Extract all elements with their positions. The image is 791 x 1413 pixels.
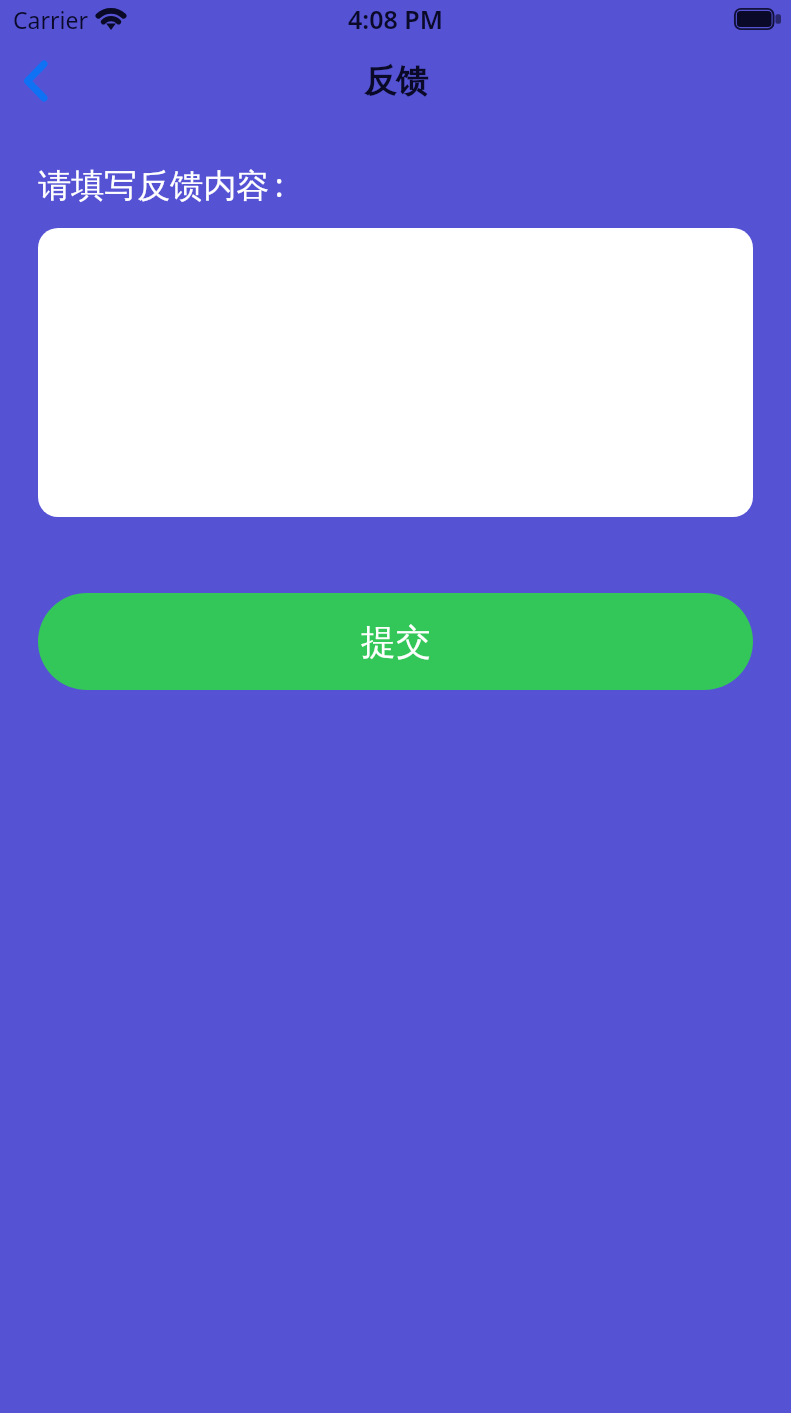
- other: Battery full: [734, 8, 781, 30]
- other: Wi-Fi signal: [91, 4, 131, 30]
- staticText: Carrier: [13, 4, 88, 35]
- staticText: 反馈: [364, 61, 428, 101]
- staticText: 提交: [361, 620, 431, 664]
- button[interactable]: Feedback input field: [38, 228, 753, 517]
- button[interactable]: 提交: [38, 593, 753, 690]
- staticText: 4:08 PM: [348, 2, 443, 36]
- button[interactable]: Back: [0, 50, 72, 112]
- staticText: 请填写反馈内容 :: [38, 162, 284, 207]
